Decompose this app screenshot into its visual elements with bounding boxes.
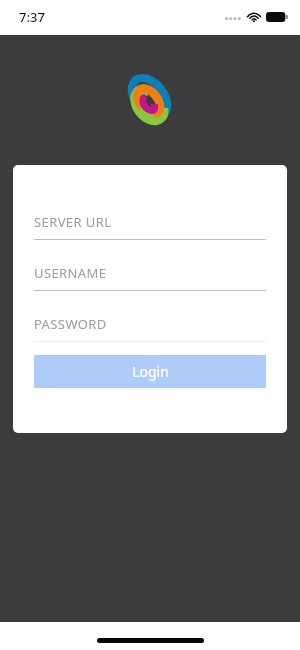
button[interactable]: Login	[34, 355, 266, 388]
button[interactable]: SERVER URL	[34, 213, 266, 240]
staticText: USERNAME	[34, 264, 107, 282]
button[interactable]: PASSWORD	[34, 315, 266, 342]
staticText: Login	[132, 362, 169, 381]
staticText: 7:37	[19, 8, 45, 26]
staticText: PASSWORD	[34, 315, 107, 333]
staticText: SERVER URL	[34, 213, 112, 231]
other: App logo	[122, 72, 178, 128]
button[interactable]: USERNAME	[34, 264, 266, 291]
